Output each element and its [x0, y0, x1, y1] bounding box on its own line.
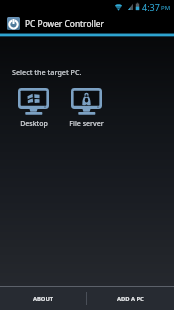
button[interactable]: File server [60, 88, 113, 129]
button[interactable]: PC Power Controller [7, 17, 20, 30]
button[interactable]: ABOUT [0, 287, 86, 310]
staticText: ABOUT [33, 295, 54, 303]
staticText: File server [69, 119, 104, 129]
staticText: PC Power Controller [25, 18, 105, 29]
staticText: Select the target PC. [12, 67, 82, 77]
staticText: PM [161, 4, 171, 12]
staticText: ADD A PC [117, 295, 144, 303]
button[interactable]: ADD A PC [87, 287, 174, 310]
staticText: Desktop [20, 119, 48, 129]
staticText: 4:37 [142, 1, 160, 13]
button[interactable]: Desktop [7, 88, 60, 129]
